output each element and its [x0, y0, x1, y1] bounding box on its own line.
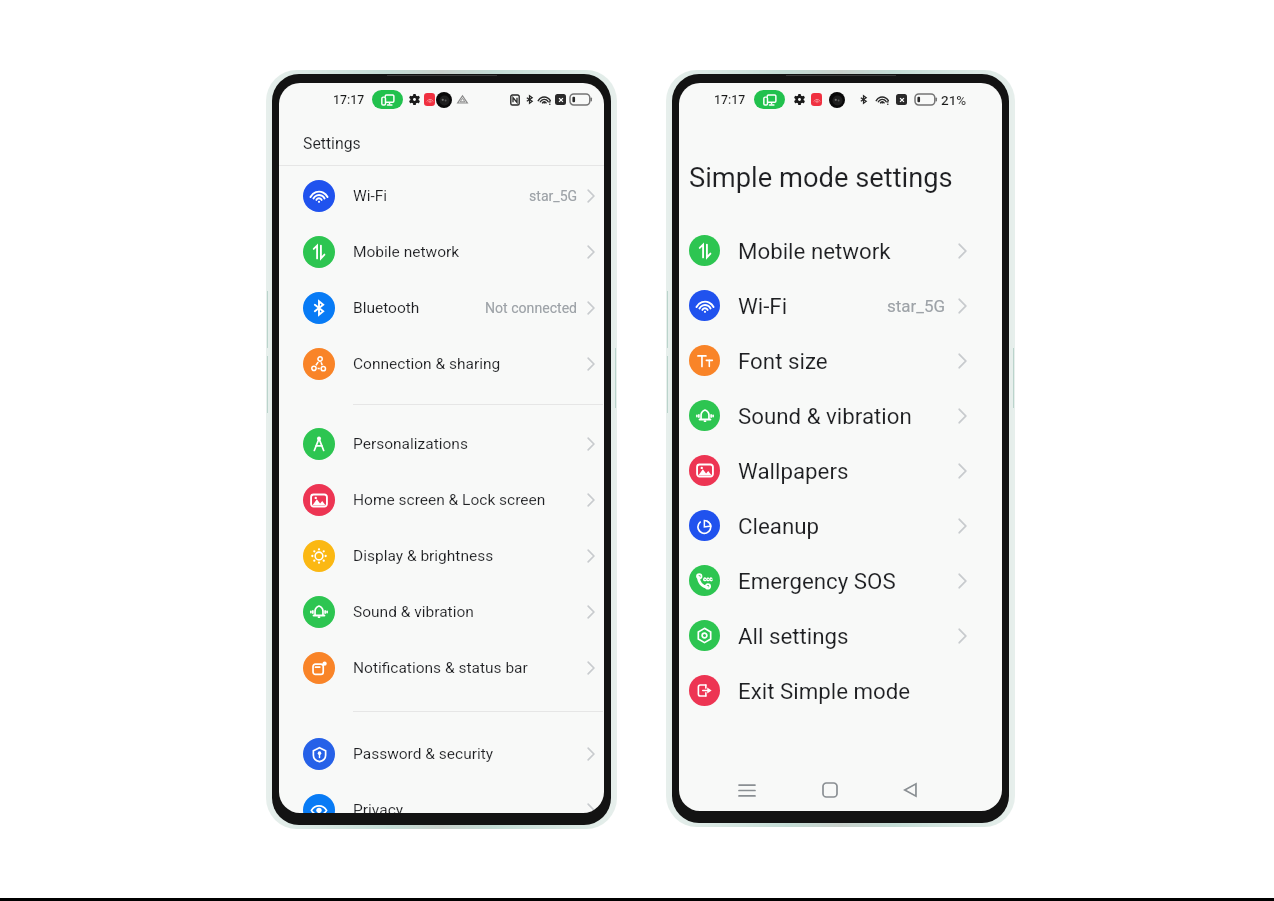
button[interactable]: Sound & vibration — [679, 388, 1002, 443]
staticText: Display & brightness — [353, 547, 494, 565]
staticText: Mobile network — [738, 238, 891, 264]
button[interactable]: Sound & vibration — [279, 584, 604, 640]
staticText: star_5G — [529, 188, 578, 205]
button[interactable]: Display & brightness — [279, 528, 604, 584]
button[interactable]: Password & security — [279, 726, 604, 782]
button[interactable]: Personalizations — [279, 416, 604, 472]
staticText: 21% — [941, 92, 967, 108]
button[interactable]: Wallpapers — [679, 443, 1002, 498]
staticText: Wi-Fi — [353, 187, 388, 205]
button[interactable]: Privacy — [279, 782, 604, 813]
staticText: Sound & vibration — [738, 403, 912, 429]
staticText: Bluetooth — [353, 299, 420, 317]
staticText: Settings — [303, 134, 361, 153]
staticText: Connection & sharing — [353, 355, 501, 373]
button[interactable]: Mobile network — [279, 224, 604, 280]
button[interactable]: Home — [812, 775, 847, 805]
staticText: Emergency SOS — [738, 568, 896, 594]
staticText: Not connected — [485, 300, 578, 317]
button[interactable]: Back — [893, 775, 928, 805]
staticText: 17:17 — [714, 93, 746, 107]
staticText: Home screen & Lock screen — [353, 491, 546, 509]
staticText: Wallpapers — [738, 458, 849, 484]
button[interactable]: Font size — [679, 333, 1002, 388]
staticText: Sound & vibration — [353, 603, 474, 621]
button[interactable]: Emergency SOS — [679, 553, 1002, 608]
staticText: Notifications & status bar — [353, 659, 528, 677]
button[interactable]: Cleanup — [679, 498, 1002, 553]
staticText: Cleanup — [738, 513, 820, 539]
staticText: star_5G — [887, 296, 946, 316]
staticText: Wi-Fi — [738, 293, 788, 319]
button[interactable]: Wi-Fi — [679, 278, 1002, 333]
staticText: All settings — [738, 623, 849, 649]
staticText: Font size — [738, 348, 828, 374]
staticText: Password & security — [353, 745, 494, 763]
staticText: Simple mode settings — [689, 162, 953, 194]
button[interactable]: Notifications & status bar — [279, 640, 604, 696]
button[interactable]: Recent apps — [729, 775, 764, 805]
button[interactable]: Wi-Fi — [279, 168, 604, 224]
button[interactable]: Mobile network — [679, 223, 1002, 278]
staticText: Mobile network — [353, 243, 460, 261]
button[interactable]: Exit Simple mode — [679, 663, 1002, 718]
staticText: 17:17 — [333, 93, 365, 107]
button[interactable]: All settings — [679, 608, 1002, 663]
staticText: Exit Simple mode — [738, 678, 911, 704]
button[interactable]: Home screen & Lock screen — [279, 472, 604, 528]
button[interactable]: Bluetooth — [279, 280, 604, 336]
staticText: Personalizations — [353, 435, 468, 453]
staticText: Privacy — [353, 801, 404, 813]
button[interactable]: Connection & sharing — [279, 336, 604, 392]
